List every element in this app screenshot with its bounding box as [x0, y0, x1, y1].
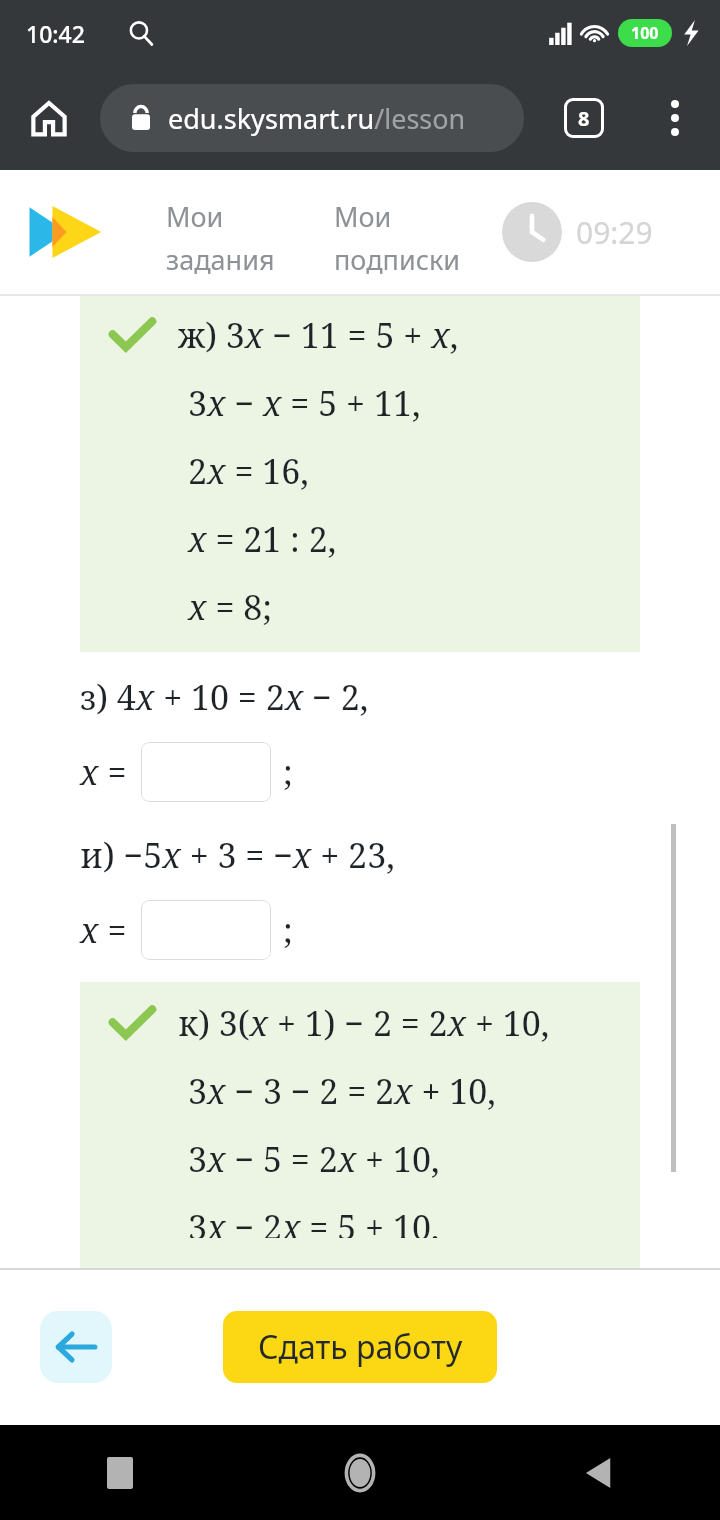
staticText: Мои	[334, 198, 392, 235]
staticText: подписки	[334, 241, 461, 278]
button[interactable]: Tabs	[556, 90, 612, 146]
staticText: 2x = 16,	[188, 448, 309, 494]
button[interactable]: More options	[648, 91, 702, 145]
staticText: 3x − 5 = 2x + 10,	[188, 1136, 440, 1182]
staticText: x =	[80, 907, 127, 953]
button[interactable]: Сдать работу	[223, 1311, 497, 1383]
staticText: задания	[166, 241, 275, 278]
button[interactable]: 09:29	[502, 202, 653, 262]
staticText: к) 3(x + 1) − 2 = 2x + 10,	[178, 1000, 550, 1046]
staticText: 8	[578, 105, 590, 132]
button[interactable]: Recents	[0, 1425, 240, 1520]
button[interactable]	[141, 900, 271, 960]
staticText: и) −5x + 3 = −x + 23,	[80, 832, 395, 878]
staticText: 10:42	[26, 18, 85, 49]
staticText: x = 8;	[188, 584, 272, 630]
staticText: edu.skysmart.ru/lesson	[168, 100, 466, 137]
button[interactable]: Back	[480, 1425, 720, 1520]
staticText: 100	[631, 22, 659, 44]
staticText: 3x − 3 − 2 = 2x + 10,	[188, 1068, 496, 1114]
staticText: 3x − x = 5 + 11,	[188, 380, 421, 426]
staticText: x = 21 : 2,	[188, 516, 337, 562]
staticText: 09:29	[576, 212, 653, 253]
button[interactable]: Back	[40, 1311, 112, 1383]
staticText: x =	[80, 749, 127, 795]
button[interactable]: Home	[240, 1425, 480, 1520]
staticText: ;	[283, 907, 293, 953]
button[interactable]	[141, 742, 271, 802]
staticText: 3x − 2x = 5 + 10,	[188, 1204, 440, 1238]
button[interactable]: Skysmart	[28, 201, 102, 263]
staticText: Сдать работу	[258, 1325, 463, 1369]
button[interactable]: Мои	[166, 194, 316, 282]
button[interactable]: edu.skysmart.ru/lesson	[100, 84, 524, 152]
staticText: з) 4x + 10 = 2x − 2,	[80, 674, 369, 720]
staticText: Мои	[166, 198, 224, 235]
staticText: ;	[283, 749, 293, 795]
button[interactable]: Мои	[334, 194, 484, 282]
button[interactable]: Home	[22, 91, 76, 145]
staticText: ж) 3x − 11 = 5 + x,	[178, 312, 459, 358]
